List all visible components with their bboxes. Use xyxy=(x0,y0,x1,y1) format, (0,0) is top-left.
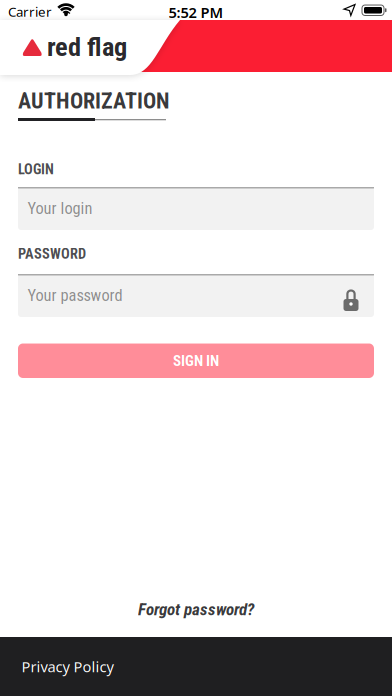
staticText: PASSWORD xyxy=(18,245,86,262)
staticText: red flag xyxy=(47,31,127,62)
staticText: SIGN IN xyxy=(173,352,219,370)
button[interactable]: Privacy Policy xyxy=(0,637,392,696)
staticText: Your password xyxy=(27,286,122,305)
staticText: Carrier xyxy=(8,3,52,20)
staticText: 5:52 PM xyxy=(168,2,223,22)
staticText: LOGIN xyxy=(18,161,54,178)
button[interactable]: Your password xyxy=(18,274,374,317)
staticText: Forgot password? xyxy=(138,599,254,619)
staticText: AUTHORIZATION xyxy=(18,88,169,114)
button[interactable]: Your login xyxy=(18,187,374,230)
button[interactable]: Forgot password? xyxy=(0,599,392,619)
staticText: Privacy Policy xyxy=(21,657,113,676)
button[interactable]: SIGN IN xyxy=(18,343,374,378)
staticText: Your login xyxy=(27,199,92,218)
